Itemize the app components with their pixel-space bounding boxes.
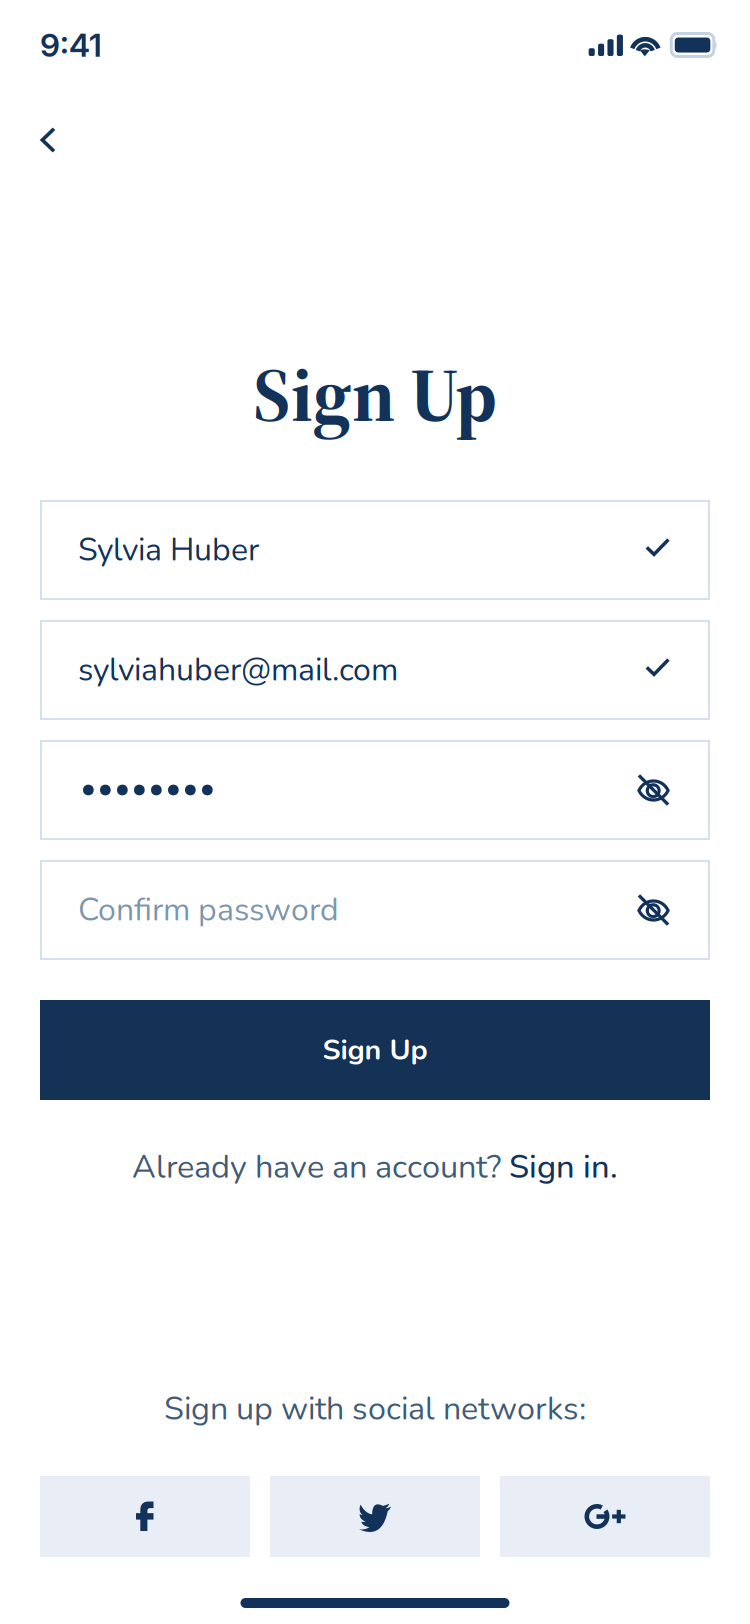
button[interactable]: Confirm password [40, 860, 710, 960]
button[interactable]: Password [40, 740, 710, 840]
staticText: Confirm password [78, 888, 339, 932]
staticText: Sign up with social networks: [164, 1387, 586, 1431]
staticText: sylviahuber@mail.com [78, 648, 398, 692]
button[interactable]: Sign up with Facebook [40, 1476, 250, 1557]
staticText: Sign in. [509, 1145, 618, 1189]
button[interactable]: Already have an account? [132, 1149, 618, 1185]
button[interactable]: Sign up with Google Plus [500, 1476, 710, 1557]
button[interactable]: Back [17, 109, 79, 171]
button[interactable]: Email, sylviahuber@mail.com [40, 620, 710, 720]
staticText: Sign Up [322, 1030, 427, 1069]
staticText: Sylvia Huber [78, 528, 259, 572]
staticText: Already have an account? [132, 1145, 509, 1189]
button[interactable]: Show password [637, 773, 670, 806]
button[interactable]: Name, Sylvia Huber [40, 500, 710, 600]
button[interactable]: Show confirm password [637, 893, 670, 926]
button[interactable]: Sign Up [0, 1000, 750, 1100]
staticText: 9:41 [40, 26, 102, 64]
button[interactable]: Sign up with Twitter [270, 1476, 480, 1557]
staticText: Sign Up [253, 342, 497, 446]
